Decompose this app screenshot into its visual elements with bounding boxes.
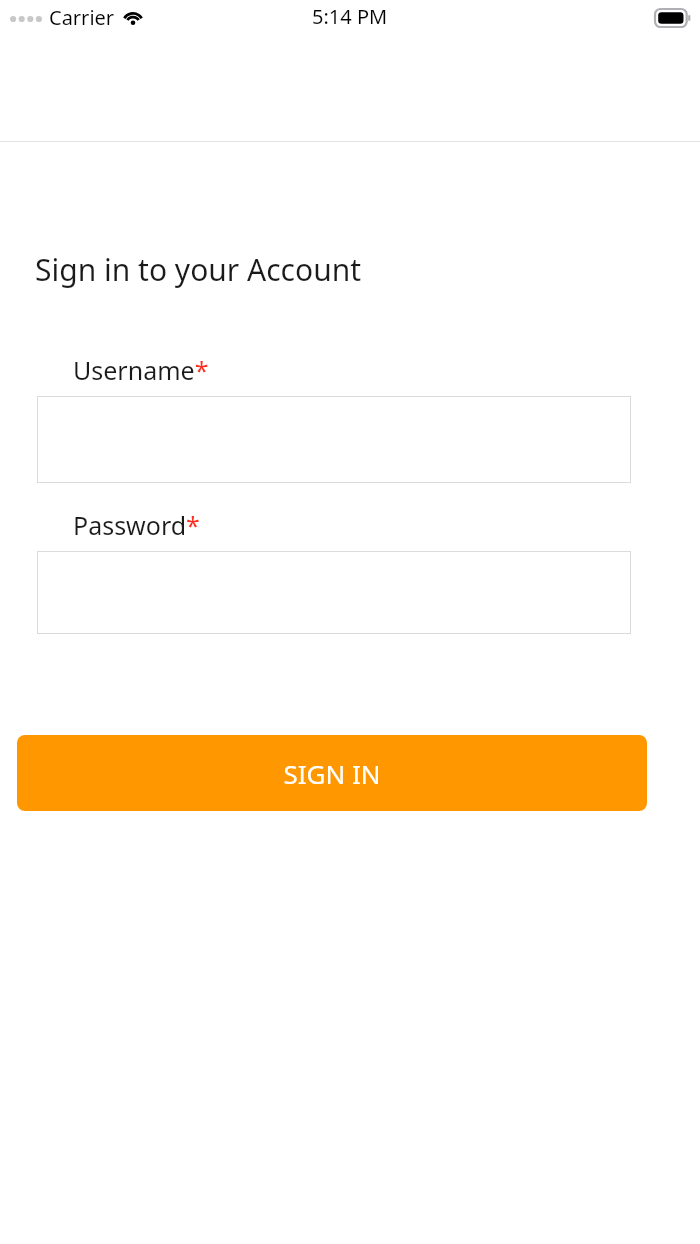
- staticText: 5:14 PM: [312, 3, 388, 30]
- staticText: Sign in to your Account: [35, 249, 362, 290]
- staticText: Password*: [73, 508, 200, 542]
- staticText: Carrier: [49, 4, 115, 31]
- staticText: Username*: [73, 353, 209, 387]
- button[interactable]: Username input field: [37, 396, 631, 483]
- staticText: SIGN IN: [283, 756, 381, 791]
- button[interactable]: Password input field: [37, 551, 631, 634]
- button[interactable]: SIGN IN: [17, 735, 647, 811]
